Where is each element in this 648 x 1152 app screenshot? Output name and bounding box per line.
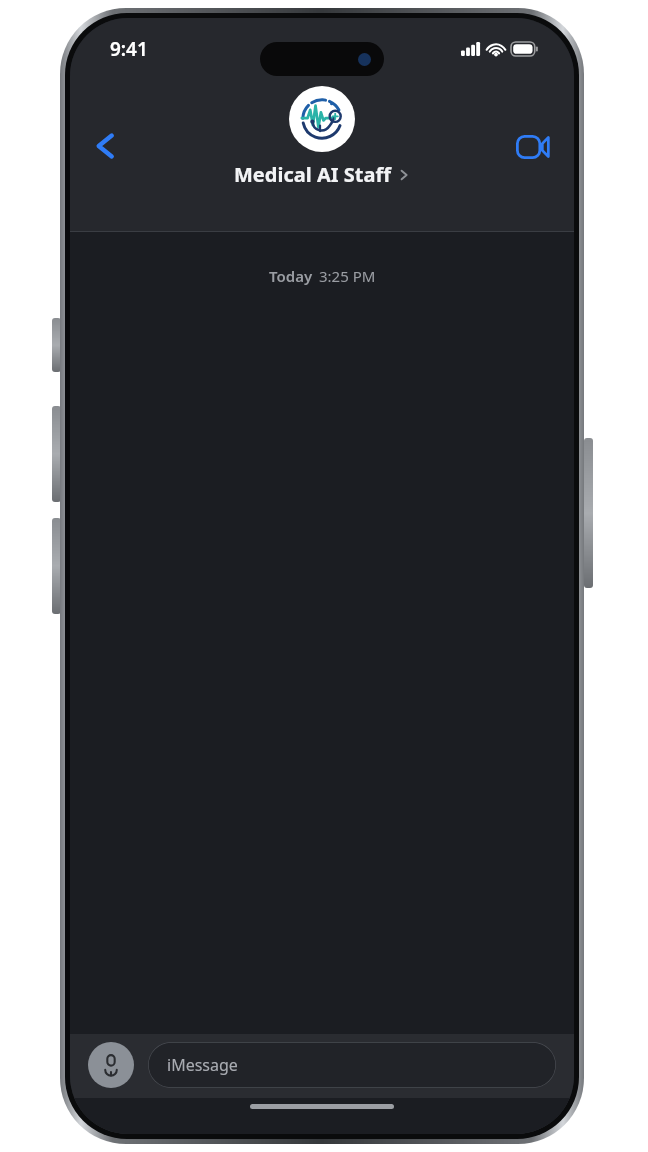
button[interactable]: iMessage bbox=[148, 1042, 556, 1088]
button[interactable]: Record audio message bbox=[88, 1042, 134, 1088]
button[interactable]: Medical AI Staff bbox=[70, 86, 574, 188]
staticText: 9:41 bbox=[110, 36, 148, 62]
staticText: 3:25 PM bbox=[319, 266, 376, 286]
staticText: Today bbox=[269, 266, 313, 286]
staticText: iMessage bbox=[167, 1054, 238, 1076]
staticText: Medical AI Staff bbox=[234, 161, 391, 188]
button[interactable]: Video call bbox=[504, 118, 562, 176]
button[interactable]: Back bbox=[78, 118, 134, 174]
